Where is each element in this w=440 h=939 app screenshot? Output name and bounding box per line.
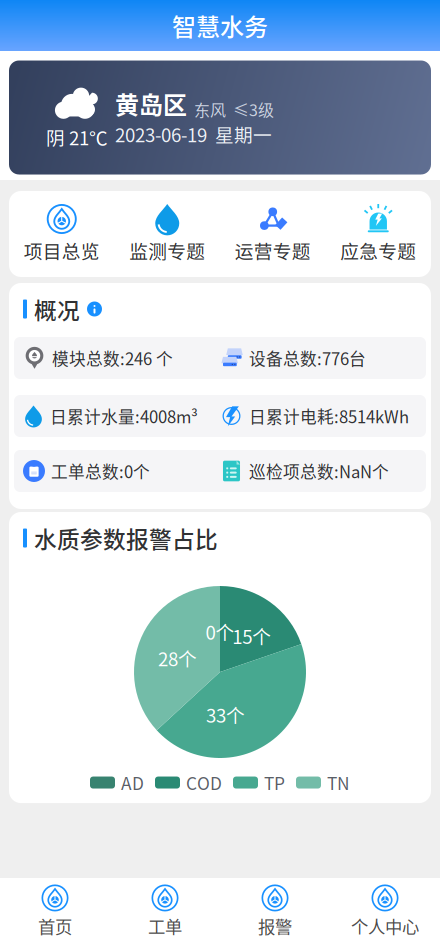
- staticText: 水质参数报警占比: [34, 522, 218, 554]
- staticText: 工单总数:0个: [51, 459, 150, 483]
- staticText: 首页: [38, 913, 72, 939]
- staticText: 巡检项总数:NaN个: [249, 459, 389, 483]
- button[interactable]: 运营专题: [220, 204, 325, 264]
- staticText: 个人中心: [351, 913, 419, 939]
- button[interactable]: 首页: [0, 885, 110, 937]
- staticText: 黄岛区: [115, 86, 187, 121]
- staticText: 0个: [205, 618, 234, 645]
- staticText: 阴 21℃: [46, 123, 108, 150]
- button[interactable]: 监测专题: [114, 204, 220, 264]
- staticText: 33个: [206, 701, 245, 728]
- staticText: AD: [121, 770, 144, 795]
- staticText: 28个: [158, 645, 197, 672]
- staticText: 监测专题: [129, 237, 205, 264]
- staticText: 日累计电耗:8514kWh: [249, 404, 409, 428]
- staticText: TN: [327, 770, 350, 795]
- button[interactable]: 个人中心: [330, 885, 440, 937]
- staticText: 日累计水量:4008m³: [50, 404, 198, 428]
- button[interactable]: 工单: [110, 885, 220, 937]
- button[interactable]: 应急专题: [325, 204, 431, 264]
- staticText: 运营专题: [235, 237, 311, 264]
- staticText: ≤3级: [233, 98, 274, 121]
- staticText: 15个: [232, 622, 271, 649]
- staticText: 东风: [194, 98, 226, 121]
- staticText: 工单: [148, 913, 182, 939]
- staticText: 项目总览: [24, 237, 100, 264]
- staticText: 2023-06-19 星期一: [115, 120, 272, 147]
- staticText: TP: [264, 770, 285, 795]
- staticText: 报警: [258, 913, 292, 939]
- staticText: COD: [186, 770, 222, 795]
- button[interactable]: 报警: [220, 885, 330, 937]
- staticText: 模块总数:246 个: [52, 346, 173, 370]
- staticText: 设备总数:776台: [249, 346, 366, 370]
- staticText: 概况: [34, 293, 80, 325]
- button[interactable]: 项目总览: [9, 204, 114, 264]
- staticText: 智慧水务: [172, 8, 268, 43]
- staticText: 应急专题: [340, 237, 416, 264]
